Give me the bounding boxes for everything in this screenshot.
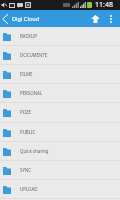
button[interactable]: PUBLIC [0,123,120,142]
button[interactable]: Upload [87,10,103,27]
button[interactable]: UPLOAD [0,180,120,199]
staticText: 11:48 [95,0,113,10]
staticText: PERSONAL [20,90,43,96]
button[interactable]: SYNC [0,161,120,180]
button[interactable]: DOCUMENTE [0,46,120,65]
staticText: Digi Cloud [12,15,40,23]
button[interactable]: Quick sharing [0,142,120,161]
staticText: Quick sharing [20,148,49,154]
button[interactable]: POZE [0,103,120,123]
button[interactable]: FILME [0,65,120,84]
staticText: PUBLIC [20,129,36,135]
staticText: SYNC [20,167,32,173]
staticText: POZE [20,109,31,115]
staticText: FILME [20,71,33,77]
button[interactable]: BACKUP [0,27,120,46]
button[interactable]: Back [0,10,10,27]
button[interactable]: More options [103,10,119,27]
staticText: DOCUMENTE [20,52,48,58]
staticText: BACKUP [20,33,37,39]
button[interactable]: PERSONAL [0,84,120,103]
staticText: UPLOAD [20,186,38,192]
